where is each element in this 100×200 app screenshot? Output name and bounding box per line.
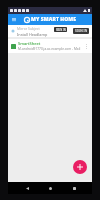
staticText: MY SMART HOME (31, 16, 77, 23)
staticText: SIGN IN (56, 28, 66, 32)
button[interactable]: Add (73, 160, 87, 174)
button[interactable]: Open navigation menu (10, 16, 17, 23)
button[interactable]: SmartSheet (8, 39, 92, 53)
staticText: M-android91770.ja.ac.example.com - Mail (18, 47, 81, 51)
button[interactable]: SIGN IN (73, 28, 89, 34)
button[interactable]: More options (84, 41, 89, 51)
staticText: SmartSheet (18, 41, 41, 46)
button[interactable]: Back (22, 183, 32, 193)
staticText: Mirror Subject (17, 26, 40, 31)
staticText: SIGN IN (75, 29, 88, 33)
button[interactable]: Home (45, 183, 55, 193)
button[interactable]: Recent apps (69, 183, 79, 193)
staticText: Install Headlamp (17, 32, 48, 37)
